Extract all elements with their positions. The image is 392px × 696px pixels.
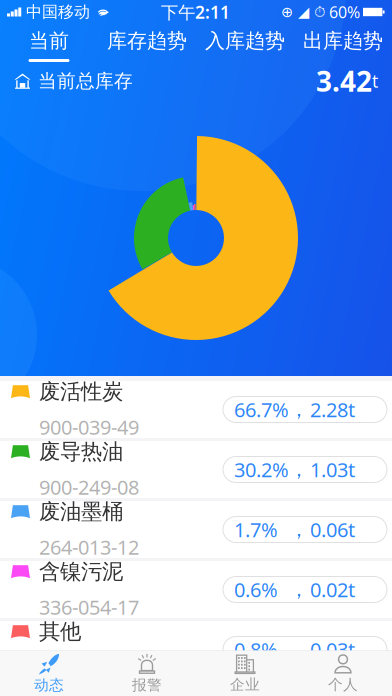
staticText: 0.03t: [310, 636, 355, 663]
staticText: 出库趋势: [303, 28, 383, 53]
staticText: 当前: [29, 28, 69, 53]
staticText: ，: [289, 637, 309, 662]
staticText: 30.2%: [234, 456, 289, 483]
staticText: 2.28t: [310, 396, 355, 423]
button[interactable]: 个人: [294, 651, 392, 696]
button[interactable]: 含镍污泥: [0, 561, 392, 621]
staticText: 报警: [132, 676, 162, 694]
button[interactable]: 其他: [0, 621, 392, 681]
staticText: 900-249-08: [39, 474, 139, 500]
staticText: 含镍污泥: [39, 559, 123, 585]
staticText: 336-054-17: [39, 594, 139, 620]
staticText: 下午2:11: [161, 0, 230, 23]
staticText: 264-013-12: [39, 534, 139, 560]
staticText: 废导热油: [39, 439, 123, 465]
button[interactable]: 入库趋势: [196, 24, 294, 62]
button[interactable]: 报警: [98, 651, 196, 696]
staticText: 中国移动: [26, 2, 90, 22]
staticText: 库存趋势: [107, 28, 187, 53]
staticText: ，: [289, 577, 309, 602]
staticText: 60%: [329, 1, 360, 23]
button[interactable]: 动态: [0, 651, 98, 696]
staticText: 其他: [39, 619, 81, 645]
button[interactable]: 废导热油: [0, 441, 392, 501]
staticText: 888-064-11: [39, 654, 139, 680]
staticText: 入库趋势: [205, 28, 285, 53]
button[interactable]: 出库趋势: [294, 24, 392, 62]
staticText: 当前总库存: [38, 69, 133, 92]
staticText: 动态: [34, 676, 64, 694]
staticText: 900-039-49: [39, 414, 139, 440]
staticText: 1.03t: [310, 456, 355, 483]
staticText: 个人: [328, 675, 358, 693]
staticText: 0.8%: [234, 636, 278, 663]
button[interactable]: 废油墨桶: [0, 501, 392, 561]
staticText: t: [372, 69, 378, 92]
staticText: ⊕ ◢ ⏱: [281, 4, 325, 20]
staticText: 0.02t: [310, 576, 355, 603]
staticText: 3.42: [316, 62, 372, 100]
staticText: 废活性炭: [39, 379, 123, 405]
staticText: 1.7%: [234, 516, 278, 543]
button[interactable]: 企业: [196, 651, 294, 696]
staticText: 企业: [230, 675, 260, 693]
staticText: ，: [289, 517, 309, 542]
staticText: 废油墨桶: [39, 499, 123, 525]
staticText: 0.06t: [310, 516, 355, 543]
staticText: ，: [289, 397, 309, 422]
button[interactable]: 当前: [0, 24, 98, 62]
staticText: 66.7%: [234, 396, 289, 423]
staticText: ，: [289, 457, 309, 482]
button[interactable]: 库存趋势: [98, 24, 196, 62]
button[interactable]: 废活性炭: [0, 381, 392, 441]
staticText: 0.6%: [234, 576, 278, 603]
